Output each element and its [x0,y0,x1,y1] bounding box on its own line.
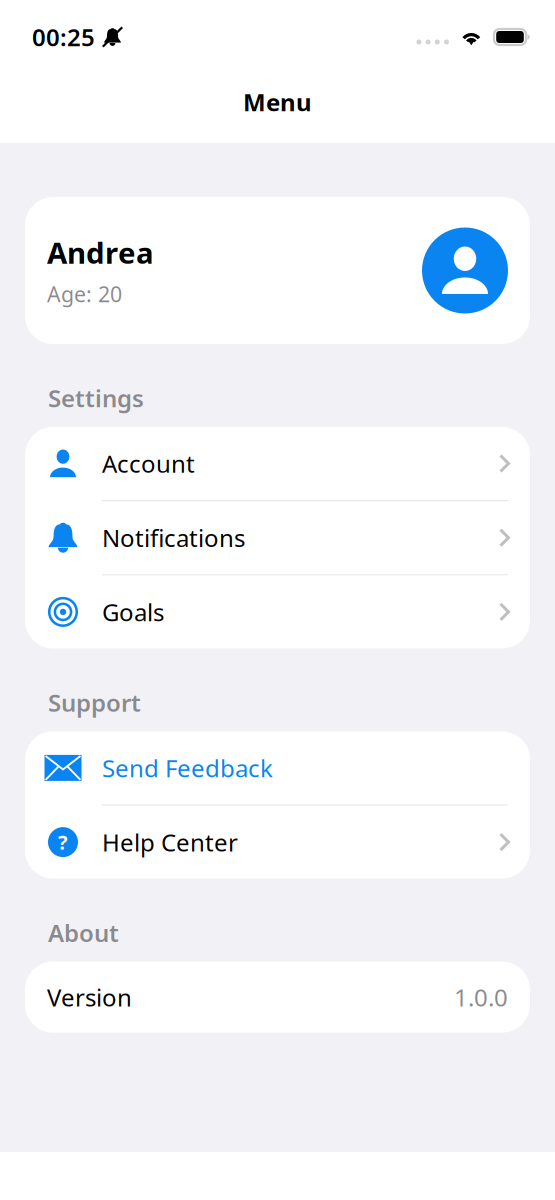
staticText: Settings [48,382,144,414]
staticText: Send Feedback [102,752,273,784]
button[interactable]: Account [25,427,530,500]
staticText: Menu [243,86,312,118]
staticText: Age: 20 [47,280,122,308]
staticText: About [48,917,119,949]
staticText: 1.0.0 [454,981,508,1013]
staticText: Goals [102,596,164,628]
button[interactable]: Notifications [25,501,530,574]
staticText: 00:25 [32,21,95,53]
button[interactable]: Goals [25,575,530,648]
staticText: Help Center [102,826,238,858]
button[interactable]: Send Feedback [25,731,530,804]
staticText: Version [47,981,132,1013]
staticText: Account [102,448,195,479]
staticText: Andrea [47,233,154,272]
staticText: ? [58,829,68,855]
staticText: Notifications [102,522,245,554]
staticText: Support [48,686,141,718]
button[interactable]: ? [25,806,530,879]
